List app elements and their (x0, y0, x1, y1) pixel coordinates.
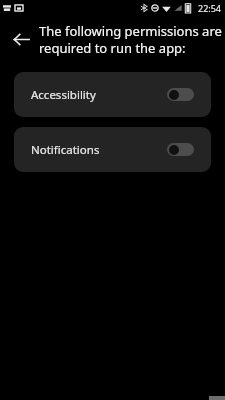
staticText: Accessibility (31, 87, 96, 103)
button[interactable]: Toggle (167, 143, 194, 156)
staticText: Notifications (31, 142, 100, 158)
staticText: The following permissions are required t… (39, 22, 222, 57)
button[interactable]: Toggle (167, 88, 194, 101)
button[interactable]: Notifications (14, 127, 211, 172)
button[interactable]: Back (4, 22, 38, 56)
button[interactable]: Accessibility (14, 72, 211, 117)
staticText: 22:54 (198, 2, 222, 14)
